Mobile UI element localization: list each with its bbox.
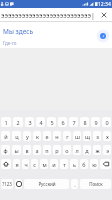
staticText: 6 [61,119,65,126]
staticText: . [74,181,76,188]
button[interactable]: 3 [25,117,34,127]
staticText: 0 [105,119,109,126]
staticText: п [45,147,49,154]
button[interactable]: Мы здесь [0,22,112,48]
staticText: е [45,133,49,140]
button[interactable]: Directions [95,28,111,44]
button[interactable]: ш [73,131,81,141]
button[interactable]: т [60,159,68,169]
button[interactable]: н [53,131,61,141]
staticText: ш [75,133,80,140]
button[interactable]: к [33,131,41,141]
button[interactable]: й [1,131,10,141]
button[interactable]: ы [12,145,21,155]
staticText: н [55,133,59,140]
button[interactable]: ж [93,145,101,155]
button[interactable]: а [33,145,41,155]
button[interactable]: ?123 [1,179,13,189]
staticText: Русский [38,181,56,187]
staticText: у [26,133,29,140]
button[interactable]: е [43,131,51,141]
button[interactable]: в [23,145,31,155]
button[interactable]: 4 [36,117,45,127]
button[interactable]: ю [90,159,98,169]
staticText: д [85,147,89,154]
staticText: т [63,161,66,168]
button[interactable]: ч [22,159,29,169]
staticText: Мы здесь [3,27,33,36]
staticText: р [55,147,59,154]
staticText: ч [24,161,28,168]
button[interactable]: 6 [58,117,67,127]
staticText: о [65,147,69,154]
staticText: 2 [16,119,20,126]
button[interactable]: г [63,131,71,141]
staticText: ?123 [2,181,12,187]
button[interactable]: р [53,145,61,155]
button[interactable]: Clear search [96,8,112,22]
staticText: ж [95,147,100,154]
staticText: я [15,161,19,168]
button[interactable]: э [103,145,111,155]
staticText: х [106,133,109,140]
staticText: ь [73,161,76,168]
staticText: а [35,147,39,154]
button[interactable]: х [103,131,111,141]
staticText: и [52,161,56,168]
staticText: м [42,161,47,168]
staticText: ю [92,161,97,168]
staticText: Где-то [3,40,17,46]
button[interactable]: б [80,159,88,169]
button[interactable]: ь [70,159,78,169]
staticText: з [96,133,99,140]
button[interactable]: 9 [91,117,100,127]
staticText: ц [15,133,19,140]
button[interactable]: с [31,159,38,169]
staticText: к [36,133,39,140]
button[interactable]: я [13,159,20,169]
staticText: 9 [94,119,98,126]
staticText: ф [3,147,8,154]
staticText: ээээээээээээээээээээээээээ| [1,11,96,21]
staticText: 5 [50,119,54,126]
button[interactable]: Поиск [80,179,111,189]
staticText: щ [85,133,90,140]
staticText: л [75,147,79,154]
staticText: ы [14,147,19,154]
button[interactable]: Backspace [100,159,111,169]
button[interactable]: 1 [1,117,11,127]
button[interactable]: п [43,145,51,155]
button[interactable]: 8 [80,117,89,127]
staticText: 12:34 [98,1,111,8]
staticText: б [82,161,86,168]
staticText: в [25,147,29,154]
button[interactable]: 5 [47,117,56,127]
button[interactable]: л [73,145,81,155]
button[interactable]: ф [1,145,10,155]
staticText: 3 [28,119,32,126]
button[interactable]: м [40,159,48,169]
staticText: 8 [83,119,87,126]
button[interactable]: Русский [24,179,69,189]
staticText: с [33,161,36,168]
button[interactable]: 7 [69,117,78,127]
button[interactable]: щ [83,131,91,141]
button[interactable]: з [93,131,101,141]
button[interactable]: у [23,131,31,141]
button[interactable]: ц [12,131,21,141]
button[interactable]: 0 [102,117,111,127]
button[interactable]: и [50,159,58,169]
staticText: Поиск [89,181,103,187]
staticText: г [66,133,69,140]
button[interactable]: . [71,179,78,189]
button[interactable]: Emoji [15,179,22,189]
staticText: э [106,147,109,154]
staticText: 7 [72,119,76,126]
button[interactable]: д [83,145,91,155]
button[interactable]: 2 [13,117,23,127]
button[interactable]: о [63,145,71,155]
staticText: 1 [4,119,8,126]
button[interactable]: Shift [1,159,11,169]
staticText: й [4,133,8,140]
staticText: 4 [39,119,43,126]
